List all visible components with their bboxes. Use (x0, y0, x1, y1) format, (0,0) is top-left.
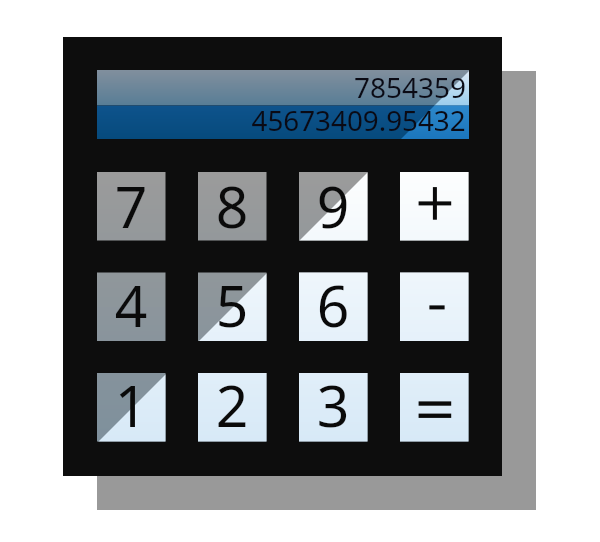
button[interactable]: 4 (97, 273, 166, 342)
button[interactable]: 6 (299, 273, 368, 342)
button[interactable]: Plus (400, 172, 469, 241)
button[interactable]: 5 (198, 273, 267, 342)
button[interactable]: Display 45673409.95432 (97, 70, 469, 139)
button[interactable]: Minus (400, 273, 469, 342)
button[interactable]: 9 (299, 172, 368, 241)
button[interactable]: 2 (198, 373, 267, 442)
button[interactable]: 7 (97, 172, 166, 241)
button[interactable]: 3 (299, 373, 368, 442)
button[interactable]: Equals (400, 373, 469, 442)
button[interactable]: 8 (198, 172, 267, 241)
button[interactable]: 1 (97, 373, 166, 442)
